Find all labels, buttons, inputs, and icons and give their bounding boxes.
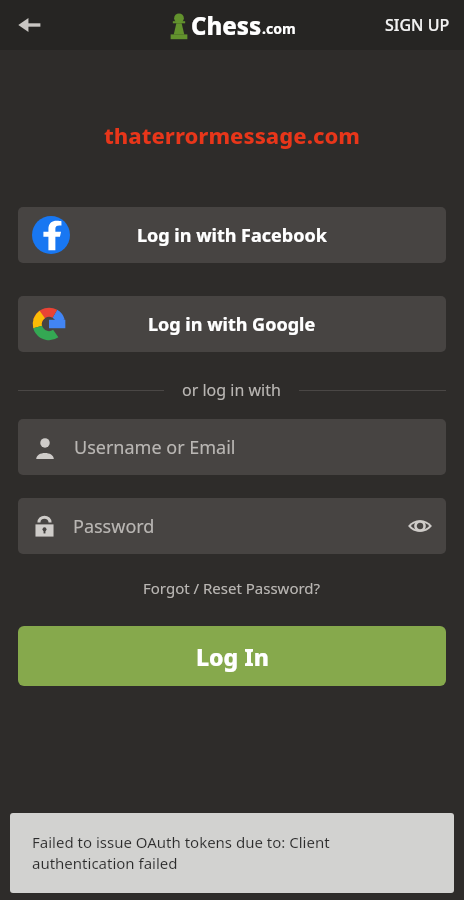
staticText: Chess	[191, 9, 262, 42]
button[interactable]: Username or Email	[18, 419, 446, 475]
button[interactable]: Log In	[18, 626, 446, 686]
staticText: Failed to issue OAuth tokens due to: Cli…	[32, 832, 432, 874]
button[interactable]: Failed to issue OAuth tokens due to: Cli…	[10, 813, 454, 893]
button[interactable]: Log in with Google	[18, 296, 446, 352]
staticText: .com	[262, 19, 296, 38]
staticText: Forgot / Reset Password?	[143, 578, 321, 598]
button[interactable]: Show password	[394, 500, 446, 552]
button[interactable]: SIGN UP	[371, 4, 464, 46]
staticText: Password	[73, 514, 155, 539]
staticText: SIGN UP	[385, 14, 450, 36]
staticText: Username or Email	[74, 435, 236, 460]
staticText: Log In	[196, 641, 269, 672]
button[interactable]: Back	[8, 3, 52, 47]
staticText: Log in with Facebook	[137, 223, 327, 248]
button[interactable]: Forgot / Reset Password?	[0, 578, 464, 598]
button[interactable]: Password	[18, 498, 446, 554]
staticText: or log in with	[182, 379, 281, 401]
staticText: Log in with Google	[148, 312, 316, 337]
button[interactable]: Log in with Facebook	[18, 207, 446, 263]
staticText: thaterrormessage.com	[0, 120, 464, 150]
